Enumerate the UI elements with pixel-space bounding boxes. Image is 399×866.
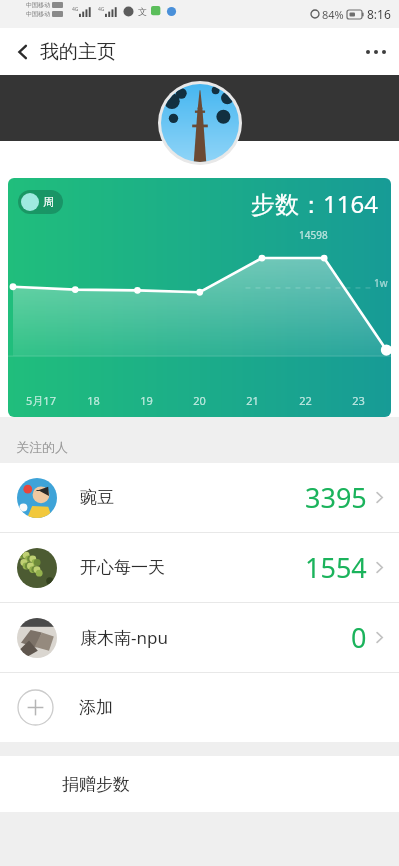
- staticText: 8:16: [367, 6, 391, 22]
- button[interactable]: 周: [8, 178, 391, 417]
- staticText: 豌豆: [80, 487, 114, 508]
- staticText: 1554: [305, 549, 367, 586]
- staticText: 康木南-npu: [80, 626, 168, 649]
- staticText: 中国移动: [26, 10, 50, 18]
- button[interactable]: Profile photo: [158, 81, 242, 165]
- button[interactable]: 豌豆: [0, 463, 399, 532]
- staticText: 4G: [72, 6, 79, 13]
- staticText: 步数：1164: [251, 187, 378, 220]
- staticText: 1w: [374, 276, 388, 290]
- staticText: 文: [138, 6, 147, 17]
- staticText: 14598: [299, 228, 328, 242]
- staticText: 添加: [79, 697, 113, 718]
- staticText: 周: [43, 195, 54, 209]
- button[interactable]: 康木南-npu: [0, 603, 399, 672]
- staticText: 5月17: [26, 393, 56, 408]
- staticText: 19: [140, 393, 153, 408]
- button[interactable]: 添加: [0, 673, 399, 742]
- staticText: 关注的人: [16, 439, 68, 455]
- staticText: 捐赠步数: [62, 774, 130, 795]
- staticText: 0: [351, 619, 367, 656]
- staticText: 22: [299, 393, 312, 408]
- staticText: 中国移动: [26, 1, 50, 9]
- button[interactable]: 开心每一天: [0, 533, 399, 602]
- staticText: 84%: [322, 7, 344, 22]
- staticText: 我的主页: [40, 40, 116, 64]
- staticText: 3395: [305, 479, 367, 516]
- staticText: 18: [87, 393, 100, 408]
- button[interactable]: 周: [18, 190, 63, 214]
- staticText: 开心每一天: [80, 557, 165, 578]
- button[interactable]: Back: [0, 29, 46, 75]
- staticText: 21: [246, 393, 259, 408]
- staticText: 23: [352, 393, 365, 408]
- staticText: 20: [193, 393, 206, 408]
- button[interactable]: More options: [353, 29, 399, 75]
- button[interactable]: 捐赠步数: [0, 756, 399, 812]
- staticText: 4G: [98, 6, 105, 13]
